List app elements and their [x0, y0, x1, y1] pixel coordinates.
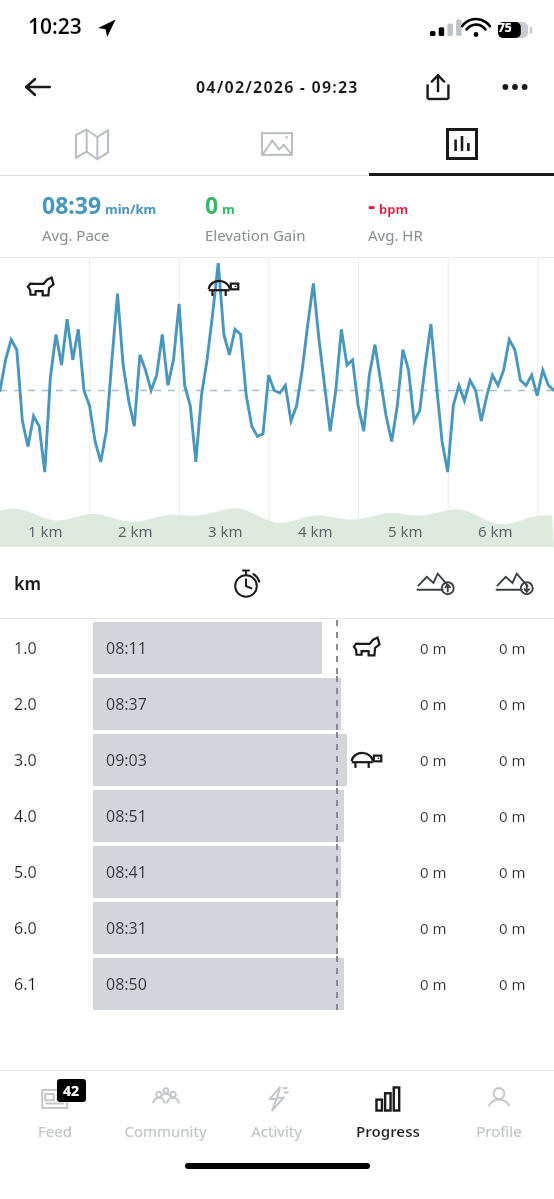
button[interactable]: More options	[491, 63, 539, 111]
button[interactable]: Charts	[369, 118, 554, 176]
staticText: 09:03	[106, 749, 147, 771]
button[interactable]: Map	[0, 118, 184, 176]
staticText: 1.0	[14, 637, 37, 659]
staticText: Avg. Pace	[42, 225, 110, 245]
staticText: 75	[498, 19, 512, 35]
staticText: 42	[63, 1081, 80, 1100]
button[interactable]: 4.0	[0, 788, 554, 844]
staticText: 4 km	[298, 521, 333, 541]
staticText: 08:51	[106, 805, 147, 827]
staticText: 4.0	[14, 805, 37, 827]
staticText: 08:41	[106, 861, 147, 883]
staticText: Progress	[356, 1121, 420, 1141]
staticText: 6.0	[14, 917, 37, 939]
staticText: 0 m	[420, 862, 447, 882]
staticText: 08:37	[106, 693, 147, 715]
staticText: 0 m	[420, 694, 447, 714]
staticText: Elevation Gain	[205, 225, 306, 245]
staticText: 1 km	[28, 521, 63, 541]
staticText: 0 m	[499, 638, 526, 658]
button[interactable]: Photos	[184, 118, 369, 176]
staticText: 5.0	[14, 861, 37, 883]
staticText: 0 m	[499, 694, 526, 714]
staticText: 08:31	[106, 917, 147, 939]
staticText: min/km	[105, 200, 157, 218]
staticText: 0 m	[499, 750, 526, 770]
staticText: 0 m	[499, 862, 526, 882]
staticText: Profile	[476, 1121, 522, 1141]
button[interactable]: Activity	[221, 1071, 332, 1153]
staticText: 0 m	[499, 918, 526, 938]
staticText: 0 m	[499, 974, 526, 994]
staticText: 3 km	[208, 521, 243, 541]
staticText: km	[14, 572, 42, 595]
staticText: 10:23	[28, 12, 82, 41]
button[interactable]: Progress	[332, 1071, 443, 1153]
staticText: 08:39	[42, 189, 102, 220]
staticText: 2 km	[118, 521, 153, 541]
staticText: 08:11	[106, 637, 147, 659]
button[interactable]: Share	[415, 64, 461, 110]
staticText: bpm	[379, 200, 409, 218]
staticText: 0 m	[420, 638, 447, 658]
staticText: 0 m	[420, 974, 447, 994]
staticText: Activity	[251, 1121, 302, 1141]
staticText: 6 km	[478, 521, 513, 541]
button[interactable]: 6.0	[0, 900, 554, 956]
staticText: 0 m	[420, 750, 447, 770]
button[interactable]: 6.1	[0, 956, 554, 1012]
staticText: 5 km	[388, 521, 423, 541]
staticText: m	[222, 200, 235, 218]
button[interactable]: Back	[14, 63, 62, 111]
staticText: 0 m	[420, 918, 447, 938]
staticText: 04/02/2026 - 09:23	[196, 76, 359, 98]
button[interactable]: Profile	[443, 1071, 554, 1153]
staticText: Avg. HR	[368, 225, 423, 245]
staticText: 0 m	[420, 806, 447, 826]
staticText: 2.0	[14, 693, 37, 715]
button[interactable]: Community	[110, 1071, 221, 1153]
button[interactable]: 5.0	[0, 844, 554, 900]
button[interactable]: 3.0	[0, 732, 554, 788]
staticText: -	[368, 189, 376, 220]
staticText: 0	[205, 189, 219, 220]
staticText: 3.0	[14, 749, 37, 771]
button[interactable]: 1.0	[0, 620, 554, 676]
staticText: 0 m	[499, 806, 526, 826]
button[interactable]: 2.0	[0, 676, 554, 732]
staticText: 6.1	[14, 973, 37, 995]
staticText: Community	[124, 1121, 207, 1141]
button[interactable]: 42	[0, 1071, 110, 1153]
staticText: Feed	[38, 1121, 72, 1141]
staticText: 08:50	[106, 973, 147, 995]
